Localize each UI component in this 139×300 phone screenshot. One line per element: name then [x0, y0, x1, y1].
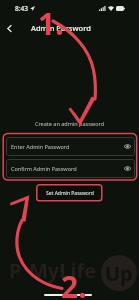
staticText: Up — [105, 260, 133, 287]
button[interactable]: Set Admin Password — [38, 186, 101, 200]
staticText: 2. — [61, 266, 87, 300]
staticText: Enter Admin Password — [11, 143, 70, 150]
staticText: P — [9, 257, 22, 284]
button[interactable]: Show password — [123, 142, 132, 151]
button[interactable]: Confirm Admin Password — [6, 159, 135, 178]
button[interactable]: Show password — [123, 164, 132, 173]
staticText: Admin Password — [31, 23, 91, 33]
button[interactable]: Back — [0, 19, 19, 37]
staticText: MyLife — [29, 257, 97, 284]
staticText: 8:43 — [15, 4, 28, 13]
staticText: Confirm Admin Password — [11, 165, 77, 172]
staticText: Create an admin password — [0, 120, 139, 127]
staticText: 1. — [38, 3, 64, 44]
button[interactable]: Enter Admin Password — [6, 137, 135, 156]
staticText: Set Admin Password — [46, 190, 94, 197]
